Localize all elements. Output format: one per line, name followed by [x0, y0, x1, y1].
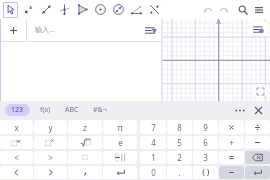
staticText: e: [118, 137, 123, 148]
staticText: y: [48, 122, 53, 133]
staticText: .: [178, 167, 181, 178]
staticText: <: [14, 152, 19, 163]
button[interactable]: 6: [193, 136, 218, 149]
staticText: +: [229, 137, 234, 148]
staticText: 8: [177, 122, 182, 133]
button[interactable]: x: [0, 120, 33, 134]
button[interactable]: 2: [167, 151, 192, 164]
button[interactable]: Show keyboard: [141, 19, 161, 41]
staticText: #&¬: [93, 105, 107, 115]
button[interactable]: More: [233, 103, 247, 117]
button[interactable]: Absolute value: [68, 151, 102, 164]
staticText: 7: [151, 122, 156, 133]
staticText: x: [14, 122, 19, 133]
button[interactable]: Undo: [200, 0, 216, 19]
button[interactable]: 123: [5, 104, 30, 116]
button[interactable]: Point tool: [19, 0, 37, 19]
button[interactable]: 5: [167, 136, 192, 149]
button[interactable]: Fullscreen: [253, 84, 267, 98]
button[interactable]: +: [219, 136, 244, 149]
button[interactable]: Answer: [219, 166, 244, 179]
button[interactable]: e: [103, 136, 137, 149]
button[interactable]: Equals: [219, 151, 244, 164]
button[interactable]: .: [167, 166, 192, 179]
button[interactable]: Circle tool: [91, 0, 109, 19]
button[interactable]: Redo: [216, 0, 232, 19]
staticText: 6: [203, 137, 208, 148]
button[interactable]: z: [68, 120, 102, 134]
staticText: 1: [151, 152, 156, 163]
staticText: ABC: [65, 105, 79, 115]
staticText: f(x): [40, 105, 51, 115]
button[interactable]: Multiply: [219, 120, 244, 134]
button[interactable]: Search: [235, 0, 251, 19]
button[interactable]: Parenthesis: [193, 166, 218, 179]
button[interactable]: Comma: [68, 166, 102, 179]
staticText: 4: [151, 137, 156, 148]
button[interactable]: >: [34, 151, 67, 164]
button[interactable]: π: [103, 120, 137, 134]
button[interactable]: Transform tool: [145, 0, 163, 19]
button[interactable]: Move tool: [1, 0, 19, 19]
button[interactable]: y: [34, 120, 67, 134]
button[interactable]: Power: [34, 136, 67, 149]
button[interactable]: Enter: [245, 166, 270, 179]
button[interactable]: Angle tool: [127, 0, 145, 19]
button[interactable]: 4: [140, 136, 166, 149]
button[interactable]: Close keyboard: [251, 103, 265, 117]
button[interactable]: 7: [140, 120, 166, 134]
staticText: 123: [11, 105, 24, 115]
button[interactable]: Minus: [245, 136, 270, 149]
staticText: 3: [203, 152, 208, 163]
staticText: π: [117, 122, 123, 133]
button[interactable]: #&¬: [91, 103, 109, 117]
button[interactable]: 输入…: [27, 19, 141, 41]
staticText: 0: [151, 167, 156, 178]
staticText: 5: [177, 137, 182, 148]
button[interactable]: Polygon tool: [73, 0, 91, 19]
button[interactable]: 3: [193, 151, 218, 164]
button[interactable]: Backspace: [245, 151, 270, 164]
staticText: 9: [203, 122, 208, 133]
button[interactable]: Graphics settings: [250, 22, 267, 36]
button[interactable]: Square root: [68, 136, 102, 149]
button[interactable]: Enter: [103, 166, 137, 179]
button[interactable]: Divide: [245, 120, 270, 134]
button[interactable]: Menu: [251, 0, 267, 19]
staticText: >: [48, 152, 53, 163]
staticText: 输入…: [35, 25, 55, 35]
button[interactable]: 8: [167, 120, 192, 134]
button[interactable]: <: [0, 151, 33, 164]
button[interactable]: f(x): [38, 103, 53, 117]
button[interactable]: ABC: [63, 103, 81, 117]
button[interactable]: Fraction: [103, 151, 137, 164]
button[interactable]: Conic tool: [109, 0, 127, 19]
button[interactable]: Square: [0, 136, 33, 149]
button[interactable]: Right: [34, 166, 67, 179]
staticText: z: [83, 122, 87, 133]
button[interactable]: 9: [193, 120, 218, 134]
button[interactable]: Perpendicular tool: [55, 0, 73, 19]
button[interactable]: 0: [140, 166, 166, 179]
button[interactable]: Left: [0, 166, 33, 179]
button[interactable]: Line tool: [37, 0, 55, 19]
button[interactable]: Add input: [0, 19, 26, 41]
staticText: 2: [177, 152, 182, 163]
button[interactable]: 1: [140, 151, 166, 164]
